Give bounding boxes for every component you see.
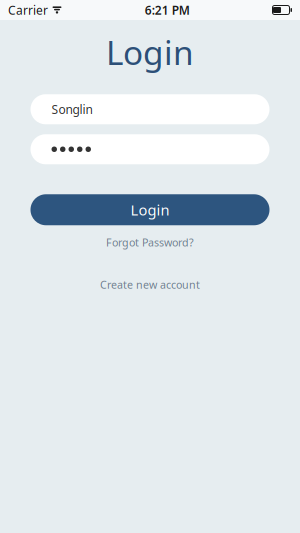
staticText: Login [106,30,194,74]
staticText: Login [130,200,169,219]
button[interactable]: Create new account [92,274,208,295]
staticText: Create new account [100,277,200,292]
button[interactable]: Forgot Password? [98,232,202,252]
staticText: Forgot Password? [106,235,194,249]
button[interactable]: Login [30,194,269,225]
staticText: Carrier [8,2,48,18]
staticText: Songlin [51,101,92,117]
staticText: 6:21 PM [145,2,190,18]
